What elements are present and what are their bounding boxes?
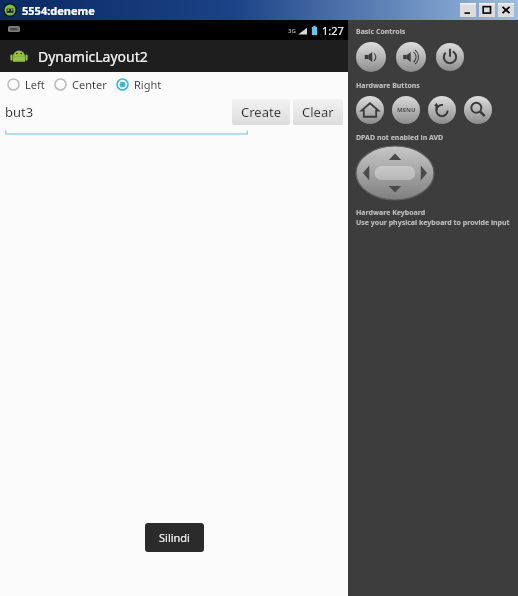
staticText: Center xyxy=(72,77,107,92)
button[interactable]: Create xyxy=(232,99,290,125)
staticText: Left xyxy=(25,77,45,92)
staticText: Hardware Keyboard xyxy=(356,208,426,218)
staticText: Silindi xyxy=(159,530,190,545)
button[interactable]: MENU xyxy=(392,96,420,124)
button[interactable]: Volume down xyxy=(356,42,386,72)
button[interactable]: Clear xyxy=(293,99,343,125)
button[interactable]: Close xyxy=(498,3,514,17)
button[interactable]: Power xyxy=(436,43,464,71)
staticText: DPAD not enabled in AVD xyxy=(356,133,444,143)
staticText: DynamicLayout2 xyxy=(38,47,148,66)
staticText: 1:27 xyxy=(322,23,344,38)
staticText: Right xyxy=(134,77,162,92)
staticText: Hardware Buttons xyxy=(356,81,420,91)
button[interactable]: Minimize xyxy=(460,3,476,17)
staticText: Basic Controls xyxy=(356,27,406,37)
staticText: Clear xyxy=(302,103,334,121)
staticText: Use your physical keyboard to provide in… xyxy=(356,218,510,228)
button[interactable]: D-pad xyxy=(356,146,434,200)
button[interactable]: Search xyxy=(464,96,492,124)
staticText: MENU xyxy=(397,106,416,114)
staticText: Create xyxy=(241,103,281,121)
staticText: 5554:deneme xyxy=(22,3,95,18)
button[interactable]: Home xyxy=(356,96,384,124)
staticText: 3G xyxy=(288,27,296,35)
button[interactable]: Right xyxy=(116,77,162,92)
staticText: but3 xyxy=(5,103,34,121)
button[interactable]: Center xyxy=(54,77,107,92)
button[interactable]: Left xyxy=(7,77,45,92)
button[interactable]: Back xyxy=(428,96,456,124)
button[interactable]: Maximize xyxy=(479,3,495,17)
button[interactable]: Volume up xyxy=(396,42,426,72)
